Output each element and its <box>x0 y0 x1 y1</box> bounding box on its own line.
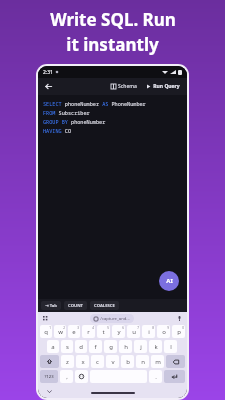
button[interactable]: AI assistant <box>159 271 179 291</box>
button[interactable]: w <box>54 325 66 338</box>
staticText: 2 <box>63 326 65 330</box>
button[interactable]: Run Query <box>144 82 182 91</box>
staticText: i <box>148 328 150 336</box>
staticText: 2:31 <box>43 69 53 76</box>
button[interactable]: n <box>136 355 149 368</box>
staticText: o <box>162 328 166 336</box>
button[interactable]: o <box>157 325 170 338</box>
staticText: c <box>96 358 99 366</box>
button[interactable]: f <box>89 340 102 353</box>
button[interactable]: Hide keyboard <box>46 388 53 395</box>
button[interactable]: h <box>119 340 132 353</box>
button[interactable]: /capture_and... <box>90 314 134 323</box>
staticText: n <box>141 358 145 366</box>
staticText: HAVING CO <box>43 127 72 134</box>
button[interactable]: , <box>60 370 73 383</box>
button[interactable]: x <box>76 355 89 368</box>
button[interactable]: Backspace <box>166 355 185 368</box>
button[interactable]: i <box>142 325 155 338</box>
staticText: COUNT <box>68 303 83 309</box>
button[interactable]: Schema <box>109 82 139 91</box>
staticText: d <box>79 343 83 351</box>
staticText: AI <box>166 277 173 285</box>
staticText: m <box>155 358 161 366</box>
staticText: v <box>111 358 115 366</box>
button[interactable]: Voice input <box>176 315 183 322</box>
staticText: , <box>66 373 68 381</box>
staticText: e <box>72 328 76 336</box>
staticText: l <box>170 343 172 351</box>
button[interactable]: y <box>112 325 125 338</box>
staticText: /capture_and... <box>100 316 130 322</box>
button[interactable]: v <box>106 355 119 368</box>
button[interactable]: Shift <box>40 355 59 368</box>
staticText: 7 <box>137 326 139 330</box>
staticText: Run Query <box>153 83 180 90</box>
staticText: q <box>44 328 48 336</box>
button[interactable]: m <box>151 355 164 368</box>
staticText: . <box>155 373 157 381</box>
staticText: 1 <box>49 326 51 330</box>
staticText: Schema <box>118 83 137 90</box>
staticText: GROUP BY phoneNumber <box>43 118 106 125</box>
button[interactable]: e <box>68 325 80 338</box>
staticText: 3 <box>77 326 79 330</box>
button[interactable]: COUNT <box>64 301 87 310</box>
staticText: 6 <box>122 326 124 330</box>
staticText: 8 <box>152 326 154 330</box>
button[interactable]: j <box>134 340 147 353</box>
button[interactable]: d <box>75 340 87 353</box>
button[interactable]: q <box>40 325 52 338</box>
staticText: y <box>117 328 121 336</box>
staticText: 9 <box>167 326 169 330</box>
staticText: h <box>124 343 128 351</box>
button[interactable]: g <box>104 340 117 353</box>
staticText: b <box>126 358 130 366</box>
staticText: SELECT phoneNumber AS PhoneNumber <box>43 100 146 107</box>
staticText: z <box>66 358 69 366</box>
button[interactable]: k <box>149 340 162 353</box>
staticText: COALESCE <box>94 303 115 309</box>
staticText: u <box>132 328 136 336</box>
button[interactable]: s <box>61 340 73 353</box>
button[interactable]: ?123 <box>40 370 58 383</box>
button[interactable]: . <box>149 370 162 383</box>
staticText: w <box>58 328 63 336</box>
button[interactable]: b <box>121 355 134 368</box>
staticText: p <box>177 328 181 336</box>
staticText: a <box>51 343 55 351</box>
staticText: k <box>154 343 158 351</box>
button[interactable]: t <box>97 325 110 338</box>
staticText: ?123 <box>44 374 54 380</box>
button[interactable]: ⇥ Tab <box>41 301 61 310</box>
button[interactable]: p <box>172 325 185 338</box>
staticText: 5 <box>107 326 109 330</box>
button[interactable]: l <box>164 340 177 353</box>
button[interactable]: Enter <box>164 370 185 383</box>
button[interactable]: COALESCE <box>90 301 119 310</box>
staticText: j <box>140 343 142 351</box>
staticText: ⇥ Tab <box>45 303 57 309</box>
staticText: 0 <box>182 326 184 330</box>
button[interactable]: Keyboard menu <box>42 315 49 322</box>
button[interactable]: c <box>91 355 104 368</box>
staticText: it instantly <box>66 33 159 56</box>
staticText: FROM Subscriber <box>43 109 90 116</box>
staticText: x <box>81 358 85 366</box>
button[interactable]: Emoji <box>75 370 88 383</box>
button[interactable]: z <box>61 355 74 368</box>
staticText: Write SQL. Run <box>50 8 176 31</box>
staticText: g <box>109 343 113 351</box>
staticText: 4 <box>92 326 94 330</box>
staticText: s <box>66 343 69 351</box>
staticText: f <box>94 343 97 351</box>
staticText: r <box>87 328 90 336</box>
button[interactable]: Back <box>43 81 54 92</box>
staticText: t <box>102 328 105 336</box>
button[interactable]: r <box>82 325 95 338</box>
button[interactable]: u <box>127 325 140 338</box>
button[interactable]: a <box>47 340 59 353</box>
